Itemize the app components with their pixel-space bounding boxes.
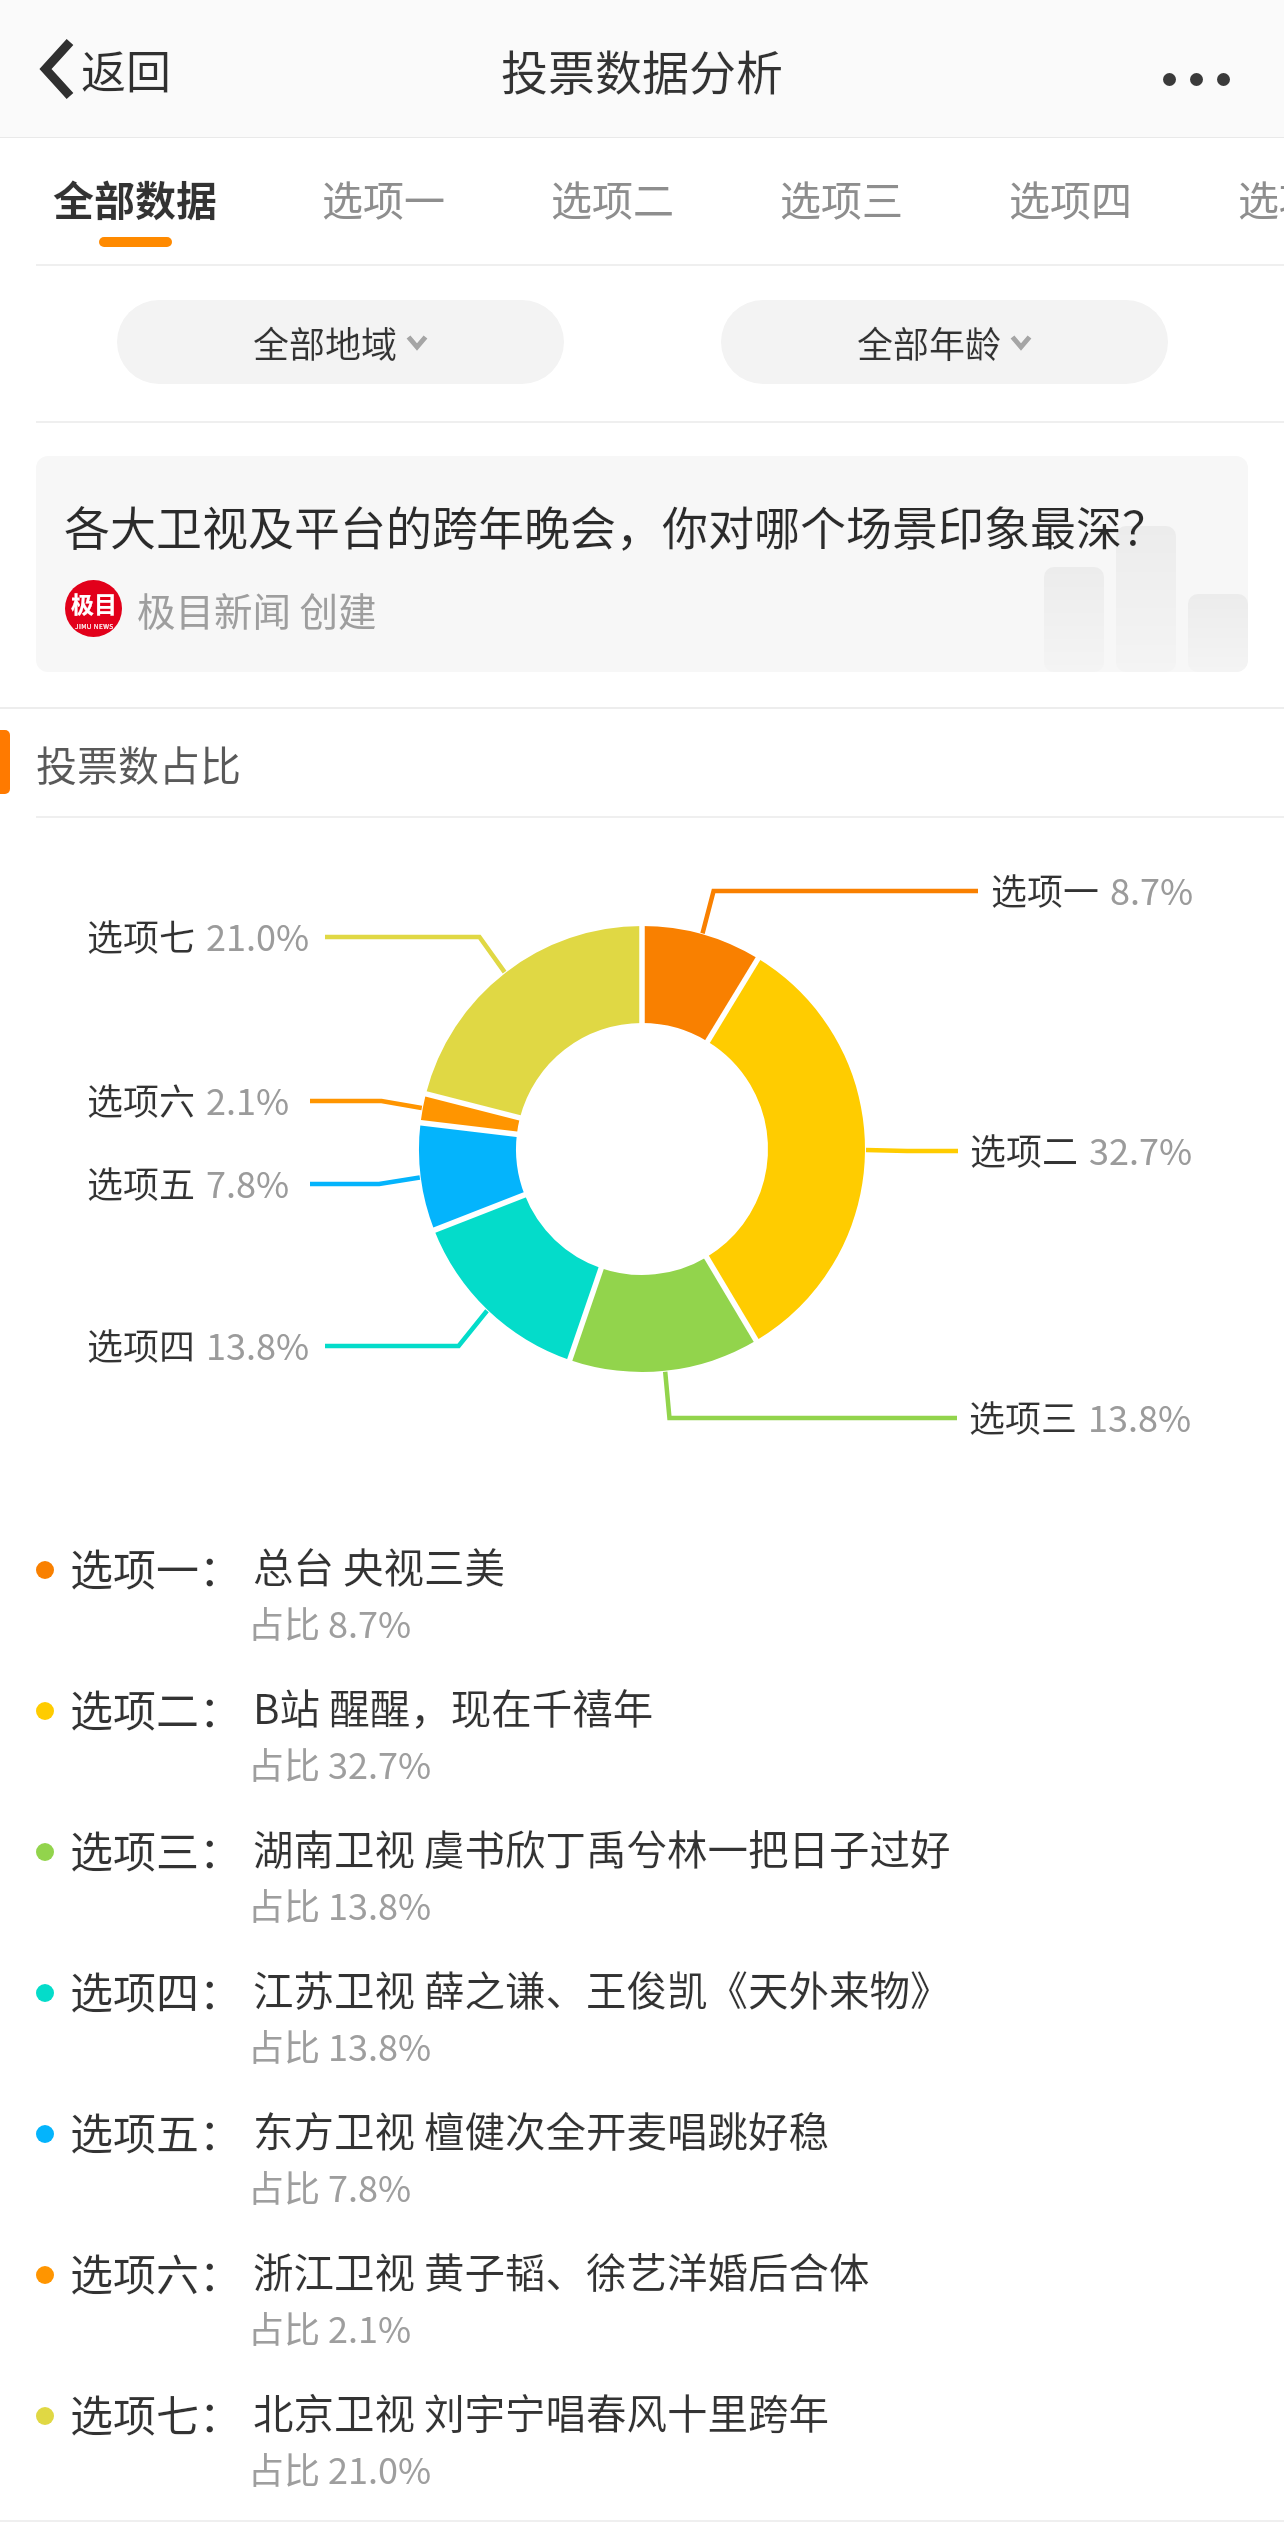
staticText: 选项一： <box>70 1536 242 1598</box>
staticText: 极目 <box>71 586 117 619</box>
staticText: 选项七： <box>70 2382 242 2444</box>
staticText: 全部年龄 <box>857 316 1002 368</box>
button[interactable]: 选项二： <box>0 1653 1284 1794</box>
staticText: 占比 7.8% <box>248 2160 412 2212</box>
button[interactable]: 选项四： <box>0 1935 1284 2076</box>
staticText: 7.8% <box>206 1156 290 1208</box>
button[interactable]: 选项五： <box>0 2076 1284 2217</box>
staticText: 占比 8.7% <box>248 1596 412 1648</box>
staticText: 湖南卫视 虞书欣丁禹兮林一把日子过好 <box>253 1818 951 1877</box>
staticText: 选项三： <box>70 1818 242 1880</box>
staticText: 全部数据 <box>53 168 217 227</box>
staticText: 选项五： <box>70 2100 242 2162</box>
staticText: 投票数据分析 <box>501 35 783 103</box>
staticText: 浙江卫视 黄子韬、徐艺洋婚后合体 <box>253 2241 870 2300</box>
button[interactable]: 各大卫视及平台的跨年晚会，你对哪个场景印象最深？ <box>36 456 1248 672</box>
staticText: 选项三 <box>969 1390 1078 1442</box>
button[interactable]: 更多 <box>1163 20 1230 138</box>
button[interactable]: 全部数据 <box>53 139 217 266</box>
staticText: 选项二： <box>70 1677 242 1739</box>
button[interactable]: 选项二 <box>551 139 674 266</box>
button[interactable]: 选项六： <box>0 2217 1284 2358</box>
staticText: 选项一 <box>991 863 1100 915</box>
staticText: 返回 <box>81 37 172 102</box>
button[interactable]: 选项三： <box>0 1794 1284 1935</box>
staticText: 选项六 <box>87 1073 196 1125</box>
button[interactable]: 选项一： <box>0 1512 1284 1653</box>
staticText: 占比 2.1% <box>248 2301 412 2353</box>
staticText: 选项六： <box>70 2241 242 2303</box>
button[interactable]: 选项一 <box>322 139 445 266</box>
staticText: 选项四： <box>70 1959 242 2021</box>
staticText: 投票数占比 <box>36 733 241 792</box>
staticText: 选项二 <box>970 1123 1079 1175</box>
staticText: 选项四 <box>87 1318 196 1370</box>
staticText: 东方卫视 檀健次全开麦唱跳好稳 <box>253 2100 830 2159</box>
staticText: 全部地域 <box>253 316 398 368</box>
staticText: 选项四 <box>1009 168 1132 227</box>
button[interactable]: 选项三 <box>780 139 903 266</box>
staticText: 江苏卫视 薛之谦、王俊凯《天外来物》 <box>253 1959 951 2018</box>
button[interactable]: 选项四 <box>1009 139 1132 266</box>
staticText: 占比 21.0% <box>248 2442 432 2494</box>
staticText: B站 醒醒，现在千禧年 <box>253 1677 654 1736</box>
staticText: 各大卫视及平台的跨年晚会，你对哪个场景印象最深？ <box>64 492 1168 559</box>
staticText: 选项二 <box>551 168 674 227</box>
staticText: 选项五 <box>87 1156 196 1208</box>
button[interactable]: 选项五 <box>1238 139 1284 266</box>
button[interactable]: 返回 <box>41 0 172 138</box>
button[interactable]: 选项七： <box>0 2358 1284 2499</box>
staticText: 2.1% <box>206 1073 290 1125</box>
staticText: 8.7% <box>1110 863 1194 915</box>
staticText: 占比 13.8% <box>248 2019 432 2071</box>
staticText: 选项七 <box>87 909 196 961</box>
staticText: 总台 央视三美 <box>253 1536 506 1595</box>
staticText: 32.7% <box>1089 1123 1193 1175</box>
button[interactable]: 全部年龄 <box>721 300 1168 384</box>
staticText: 21.0% <box>206 909 310 961</box>
staticText: 占比 13.8% <box>248 1878 432 1930</box>
staticText: 选项五 <box>1238 168 1284 227</box>
staticText: 占比 32.7% <box>248 1737 432 1789</box>
staticText: 选项三 <box>780 168 903 227</box>
staticText: 13.8% <box>1088 1390 1192 1442</box>
staticText: 北京卫视 刘宇宁唱春风十里跨年 <box>253 2382 830 2441</box>
staticText: JIMU NEWS <box>75 621 114 630</box>
staticText: 选项一 <box>322 168 445 227</box>
staticText: 极目新闻 创建 <box>137 581 377 637</box>
staticText: 13.8% <box>206 1318 310 1370</box>
button[interactable]: 全部地域 <box>117 300 564 384</box>
